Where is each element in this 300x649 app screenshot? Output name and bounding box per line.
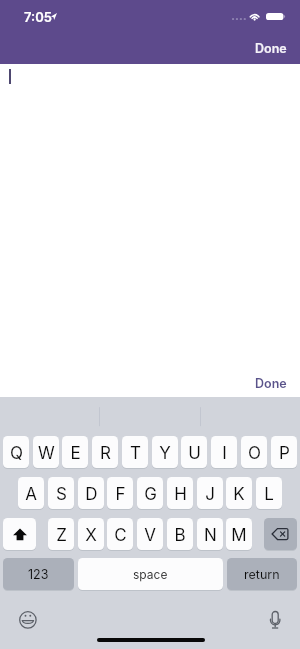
staticText: O	[248, 443, 261, 464]
staticText: 123	[28, 567, 49, 582]
button[interactable]: space	[78, 558, 223, 590]
button[interactable]: Dictate	[268, 610, 283, 631]
button[interactable]: M	[226, 518, 252, 550]
staticText: U	[188, 443, 201, 464]
staticText: V	[144, 525, 156, 546]
button[interactable]: A	[18, 477, 44, 509]
button[interactable]: Done	[248, 371, 294, 395]
button[interactable]: P	[271, 436, 297, 468]
button[interactable]: H	[167, 477, 193, 509]
staticText: A	[25, 484, 37, 505]
staticText: R	[100, 443, 111, 464]
button[interactable]: U	[181, 436, 207, 468]
staticText: space	[133, 567, 168, 582]
button[interactable]: B	[167, 518, 193, 550]
staticText: D	[85, 484, 98, 505]
button[interactable]: S	[48, 477, 74, 509]
staticText: J	[205, 484, 215, 505]
button[interactable]: Y	[152, 436, 178, 468]
button[interactable]: T	[122, 436, 148, 468]
button[interactable]: R	[92, 436, 118, 468]
button[interactable]: Emoji keyboard	[17, 609, 39, 631]
button[interactable]: L	[256, 477, 282, 509]
staticText: Z	[56, 525, 67, 546]
staticText: W	[38, 443, 55, 464]
staticText: Y	[159, 443, 171, 464]
staticText: E	[70, 443, 81, 464]
button[interactable]: E	[62, 436, 88, 468]
button[interactable]: J	[197, 477, 223, 509]
staticText: F	[115, 484, 126, 505]
staticText: 7:05	[24, 9, 52, 25]
button[interactable]: C	[107, 518, 133, 550]
staticText: Done	[255, 376, 287, 391]
button[interactable]: F	[107, 477, 133, 509]
button[interactable]: 123	[3, 558, 74, 590]
button[interactable]: N	[197, 518, 223, 550]
button[interactable]: V	[137, 518, 163, 550]
button[interactable]: D	[78, 477, 104, 509]
staticText: X	[85, 525, 97, 546]
staticText: H	[174, 484, 187, 505]
staticText: C	[114, 525, 127, 546]
staticText: S	[56, 484, 67, 505]
button[interactable]: X	[78, 518, 104, 550]
staticText: P	[279, 443, 290, 464]
staticText: I	[222, 443, 227, 464]
button[interactable]: Z	[48, 518, 74, 550]
button[interactable]: Shift	[3, 518, 36, 550]
button[interactable]: I	[211, 436, 237, 468]
staticText: Q	[10, 443, 23, 464]
staticText: T	[130, 443, 141, 464]
button[interactable]: O	[241, 436, 267, 468]
button[interactable]: Done	[248, 36, 294, 60]
staticText: return	[244, 567, 280, 582]
button[interactable]: return	[227, 558, 297, 590]
button[interactable]: G	[137, 477, 163, 509]
button[interactable]: Q	[3, 436, 29, 468]
staticText: N	[204, 525, 217, 546]
button[interactable]: K	[226, 477, 252, 509]
staticText: G	[144, 484, 157, 505]
staticText: Done	[255, 41, 287, 56]
button[interactable]: Backspace	[264, 518, 297, 550]
button[interactable]: W	[33, 436, 59, 468]
staticText: B	[174, 525, 186, 546]
staticText: K	[233, 484, 245, 505]
staticText: M	[231, 525, 247, 546]
staticText: L	[264, 484, 274, 505]
